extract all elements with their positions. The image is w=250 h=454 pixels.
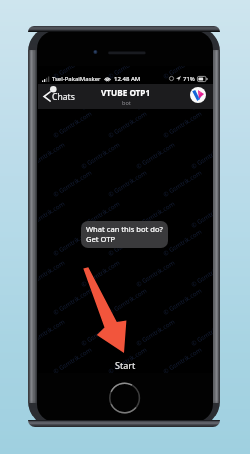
staticText: bot xyxy=(122,99,131,106)
staticText: © Gsmtrik.com xyxy=(51,109,93,139)
staticText: © Gsmtrik.com xyxy=(79,140,121,170)
staticText: © Gsmtrik.com xyxy=(79,81,121,111)
staticText: VTUBE OTP1 xyxy=(101,87,151,98)
staticText: © Gsmtrik.com xyxy=(106,227,148,257)
staticText: © Gsmtrik.com xyxy=(51,168,93,198)
button[interactable]: Start xyxy=(38,357,213,373)
staticText: © Gsmtrik.com xyxy=(79,199,121,229)
staticText: © Gsmtrik.com xyxy=(161,168,203,198)
staticText: Chats xyxy=(52,91,75,103)
staticText: © Gsmtrik.com xyxy=(161,227,203,257)
staticText: © Gsmtrik.com xyxy=(38,140,66,170)
staticText: © Gsmtrik.com xyxy=(189,81,213,111)
staticText: © Gsmtrik.com xyxy=(189,317,213,347)
staticText: © Gsmtrik.com xyxy=(134,199,176,229)
staticText: © Gsmtrik.com xyxy=(134,81,176,111)
staticText: © Gsmtrik.com xyxy=(38,258,66,288)
staticText: © Gsmtrik.com xyxy=(161,109,203,139)
button[interactable]: What can this bot do? xyxy=(81,221,168,248)
staticText: © Gsmtrik.com xyxy=(189,258,213,288)
staticText: © Gsmtrik.com xyxy=(51,345,93,373)
staticText: © Gsmtrik.com xyxy=(106,66,148,80)
staticText: Get OTP xyxy=(86,234,116,244)
staticText: 71% xyxy=(183,75,195,83)
staticText: © Gsmtrik.com xyxy=(161,66,203,80)
staticText: © Gsmtrik.com xyxy=(106,168,148,198)
staticText: What can this bot do? xyxy=(86,224,163,234)
staticText: © Gsmtrik.com xyxy=(38,81,66,111)
staticText: © Gsmtrik.com xyxy=(189,140,213,170)
staticText: Tsel-PakaiMasker xyxy=(52,75,101,83)
staticText: © Gsmtrik.com xyxy=(79,317,121,347)
staticText: Start xyxy=(115,359,136,371)
staticText: © Gsmtrik.com xyxy=(51,286,93,316)
staticText: © Gsmtrik.com xyxy=(106,345,148,373)
staticText: © Gsmtrik.com xyxy=(161,345,203,373)
staticText: © Gsmtrik.com xyxy=(134,140,176,170)
staticText: 12.48 AM xyxy=(114,75,141,83)
staticText: © Gsmtrik.com xyxy=(106,109,148,139)
button[interactable]: Bot profile xyxy=(190,87,206,103)
button[interactable]: Chats xyxy=(42,84,78,109)
staticText: © Gsmtrik.com xyxy=(51,66,93,80)
staticText: © Gsmtrik.com xyxy=(106,286,148,316)
staticText: © Gsmtrik.com xyxy=(134,258,176,288)
staticText: © Gsmtrik.com xyxy=(38,317,66,347)
staticText: © Gsmtrik.com xyxy=(79,258,121,288)
staticText: © Gsmtrik.com xyxy=(51,227,93,257)
staticText: © Gsmtrik.com xyxy=(38,199,66,229)
staticText: © Gsmtrik.com xyxy=(161,286,203,316)
staticText: © Gsmtrik.com xyxy=(134,317,176,347)
staticText: © Gsmtrik.com xyxy=(189,199,213,229)
